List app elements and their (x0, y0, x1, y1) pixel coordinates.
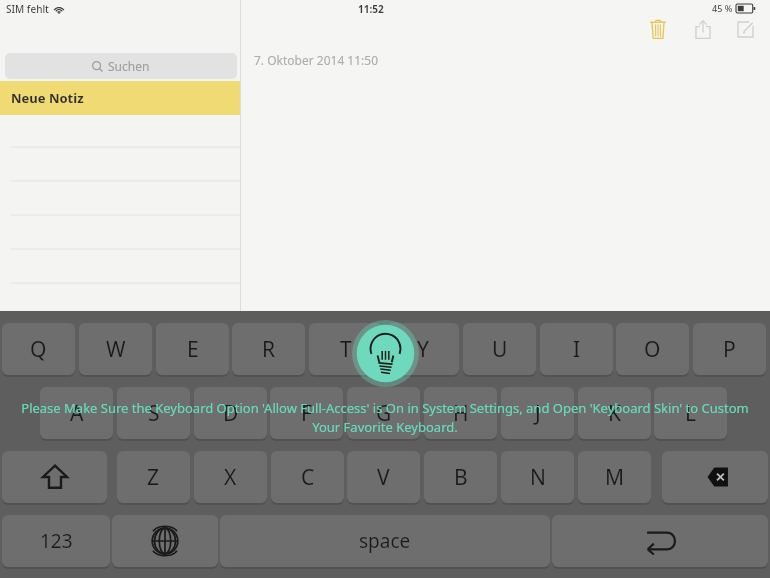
button[interactable]: 123 (2, 515, 110, 567)
button[interactable]: D (194, 387, 267, 439)
staticText: N (530, 463, 546, 492)
button[interactable]: Backspace (662, 451, 768, 503)
button[interactable]: Shift (2, 451, 107, 503)
staticText: B (454, 463, 468, 492)
button[interactable]: N (501, 451, 574, 503)
button[interactable]: K (578, 387, 651, 439)
staticText: F (301, 399, 312, 428)
staticText: T (340, 335, 352, 364)
staticText: Please Make Sure the Keyboard Option 'Al… (14, 399, 756, 436)
staticText: P (723, 335, 736, 364)
button[interactable]: H (424, 387, 497, 439)
staticText: A (70, 399, 84, 428)
button[interactable]: F (270, 387, 343, 439)
button[interactable]: I (540, 323, 613, 375)
staticText: K (608, 399, 621, 428)
button[interactable]: J (501, 387, 574, 439)
button[interactable]: X (194, 451, 267, 503)
button[interactable]: V (347, 451, 420, 503)
button[interactable]: A (40, 387, 113, 439)
staticText: SIM fehlt (6, 2, 49, 16)
staticText: 7. Oktober 2014 11:50 (254, 52, 379, 68)
staticText: D (223, 399, 239, 428)
button[interactable]: Z (117, 451, 190, 503)
staticText: G (376, 399, 392, 428)
button[interactable]: Y (386, 323, 459, 375)
staticText: M (605, 463, 625, 492)
staticText: X (224, 463, 237, 492)
staticText: U (492, 335, 508, 364)
button[interactable]: space (220, 515, 550, 567)
button[interactable]: P (693, 323, 766, 375)
staticText: R (262, 335, 276, 364)
staticText: O (644, 335, 661, 364)
staticText: 45 % (712, 2, 733, 14)
staticText: Q (30, 335, 47, 364)
staticText: Suchen (108, 58, 150, 74)
button[interactable]: Return (552, 515, 768, 567)
button[interactable]: G (347, 387, 420, 439)
button[interactable]: S (117, 387, 190, 439)
button[interactable]: U (463, 323, 536, 375)
staticText: space (359, 528, 411, 554)
button[interactable]: Suchen (5, 53, 237, 79)
staticText: E (187, 335, 199, 364)
button[interactable]: O (616, 323, 689, 375)
button[interactable]: Q (2, 323, 75, 375)
button[interactable]: B (424, 451, 497, 503)
staticText: V (377, 463, 390, 492)
staticText: C (301, 463, 315, 492)
staticText: J (535, 399, 541, 428)
button[interactable]: E (156, 323, 229, 375)
button[interactable]: C (271, 451, 344, 503)
button[interactable]: W (79, 323, 152, 375)
staticText: L (685, 399, 697, 428)
button[interactable]: Neue Notiz (0, 81, 240, 115)
button[interactable]: L (654, 387, 727, 439)
staticText: H (453, 399, 469, 428)
button[interactable]: Share (688, 14, 718, 44)
staticText: I (573, 335, 581, 364)
staticText: W (106, 335, 126, 364)
staticText: 11:52 (358, 2, 384, 16)
staticText: S (148, 399, 160, 428)
button[interactable]: M (578, 451, 651, 503)
button[interactable]: Delete (643, 14, 673, 44)
staticText: 123 (40, 528, 73, 554)
button[interactable]: Compose (730, 14, 760, 44)
staticText: Y (417, 335, 429, 364)
staticText: Neue Notiz (11, 89, 84, 107)
button[interactable]: T (309, 323, 382, 375)
button[interactable]: R (232, 323, 305, 375)
button[interactable]: Keyboard skin (352, 320, 419, 387)
staticText: Z (147, 463, 160, 492)
button[interactable]: Next keyboard (112, 515, 218, 567)
